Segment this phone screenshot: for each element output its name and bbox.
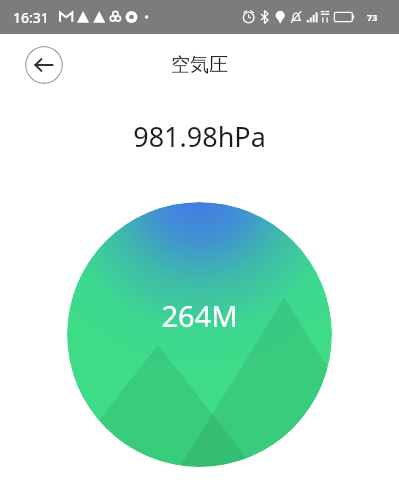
staticText: 73	[367, 11, 378, 23]
staticText: 264M	[161, 296, 238, 335]
button[interactable]: Altitude 264 meters	[67, 202, 332, 467]
staticText: 16:31	[13, 8, 49, 27]
button[interactable]: Back	[25, 46, 63, 84]
staticText: 981.98hPa	[0, 118, 399, 155]
staticText: 空気圧	[171, 53, 228, 77]
